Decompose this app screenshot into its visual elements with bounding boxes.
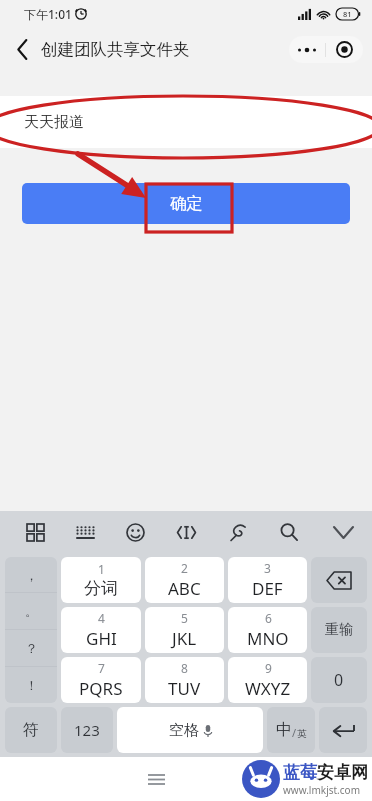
staticText: TUV — [168, 677, 201, 700]
staticText: 81 — [343, 9, 352, 19]
staticText: WXYZ — [245, 677, 291, 700]
staticText: 安卓网 — [317, 762, 368, 783]
button[interactable]: grid — [10, 511, 60, 553]
staticText: 空格 — [169, 721, 199, 740]
button[interactable]: 123 — [61, 707, 113, 753]
staticText: ？ — [25, 640, 38, 656]
staticText: ABC — [168, 577, 201, 600]
button[interactable]: 8 — [145, 657, 224, 703]
button[interactable]: 1 — [61, 557, 141, 603]
staticText: 2 — [181, 560, 188, 576]
button[interactable]: 3 — [228, 557, 307, 603]
staticText: MNO — [247, 627, 289, 650]
staticText: 。 — [25, 603, 38, 619]
button[interactable]: 0 — [311, 657, 367, 703]
staticText: ， — [25, 567, 38, 583]
button[interactable]: 9 — [228, 657, 307, 703]
staticText: 下午1:01 — [24, 6, 72, 22]
button[interactable]: Recent apps — [138, 761, 174, 797]
staticText: 3 — [264, 560, 271, 576]
button[interactable]: search — [263, 511, 314, 553]
button[interactable]: cursor — [161, 511, 212, 553]
button[interactable]: 5 — [145, 607, 224, 653]
button[interactable]: Backspace — [311, 557, 367, 603]
button[interactable]: ， — [5, 557, 57, 592]
button[interactable]: 4 — [61, 607, 141, 653]
staticText: 分词 — [84, 578, 118, 599]
staticText: 创建团队共享文件夹 — [41, 39, 190, 60]
button[interactable]: 2 — [145, 557, 224, 603]
button[interactable]: Close — [326, 36, 363, 63]
button[interactable]: 中 — [267, 707, 315, 753]
button[interactable]: 。 — [5, 593, 57, 629]
staticText: 8 — [181, 660, 188, 676]
staticText: 重输 — [325, 621, 353, 639]
button[interactable]: Back — [0, 28, 44, 70]
button[interactable]: clip — [212, 511, 263, 553]
staticText: 5 — [181, 610, 188, 626]
button[interactable]: emoji — [110, 511, 161, 553]
button[interactable]: 6 — [228, 607, 307, 653]
staticText: 天天报道 — [24, 113, 84, 132]
button[interactable]: 天天报道 — [0, 96, 372, 148]
button[interactable]: 确定 — [22, 183, 350, 224]
staticText: 6 — [265, 610, 272, 626]
button[interactable]: 符 — [5, 707, 57, 753]
staticText: GHI — [86, 627, 117, 650]
staticText: 123 — [74, 720, 100, 740]
staticText: 9 — [265, 660, 272, 676]
button[interactable]: 空格 — [117, 707, 263, 753]
staticText: 7 — [98, 660, 105, 676]
button[interactable]: Hide keyboard — [314, 511, 372, 553]
button[interactable]: More — [289, 36, 325, 63]
staticText: DEF — [252, 577, 283, 600]
staticText: 0 — [334, 669, 344, 691]
button[interactable]: keypad — [60, 511, 110, 553]
staticText: 1 — [98, 561, 105, 577]
staticText: 中 — [276, 720, 292, 740]
staticText: 符 — [23, 720, 39, 740]
button[interactable]: ！ — [5, 667, 57, 703]
staticText: 英 — [297, 728, 307, 740]
staticText: JKL — [172, 627, 197, 650]
staticText: 蓝莓 — [283, 762, 317, 783]
staticText: / — [292, 725, 297, 740]
button[interactable]: 重输 — [311, 607, 367, 653]
button[interactable]: Enter — [319, 707, 367, 753]
button[interactable]: 7 — [61, 657, 141, 703]
staticText: 确定 — [170, 193, 203, 214]
staticText: ！ — [25, 677, 38, 693]
staticText: www.lmkjst.com — [283, 783, 360, 797]
staticText: PQRS — [79, 677, 123, 700]
button[interactable]: ？ — [5, 630, 57, 666]
staticText: 4 — [98, 610, 105, 626]
